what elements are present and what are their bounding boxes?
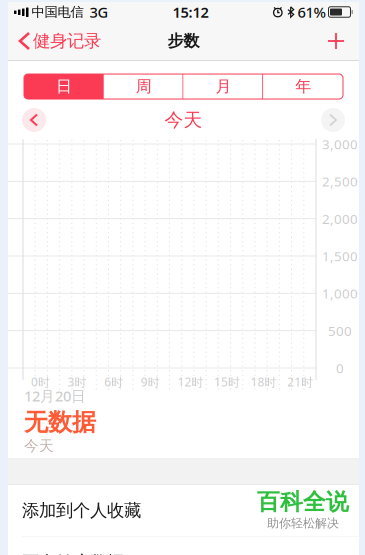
button[interactable]: 周: [104, 74, 184, 99]
button[interactable]: 月: [183, 74, 263, 99]
staticText: 12月20日: [24, 386, 86, 405]
staticText: 21时: [287, 374, 313, 390]
staticText: 9时: [141, 374, 160, 390]
staticText: 周: [136, 77, 152, 96]
button[interactable]: Add: [317, 22, 355, 60]
staticText: 12时: [177, 374, 203, 390]
staticText: 15:12: [172, 2, 208, 22]
staticText: 1,500: [322, 247, 358, 265]
staticText: 今天: [24, 437, 54, 455]
staticText: 500: [328, 322, 352, 340]
button[interactable]: Previous day: [8, 106, 60, 134]
staticText: 健身记录: [33, 30, 101, 52]
staticText: 添加到个人收藏: [22, 500, 141, 521]
button[interactable]: 健身记录: [12, 22, 109, 60]
staticText: 年: [295, 77, 311, 96]
staticText: 更多健康数据: [22, 551, 124, 555]
staticText: 1,000: [322, 284, 358, 302]
button[interactable]: 年: [263, 74, 343, 99]
staticText: 步数: [167, 31, 199, 51]
staticText: 3时: [68, 374, 87, 390]
staticText: 0: [336, 359, 344, 377]
staticText: 18时: [251, 374, 277, 390]
staticText: 中国电信: [31, 4, 83, 20]
staticText: 月: [215, 77, 231, 96]
staticText: 日: [56, 77, 72, 96]
button[interactable]: 日: [24, 74, 104, 99]
staticText: 0时: [31, 374, 50, 390]
staticText: 2,000: [322, 210, 358, 228]
staticText: 61%: [297, 2, 325, 22]
staticText: 6时: [104, 374, 123, 390]
staticText: 百科全说: [257, 488, 349, 516]
staticText: 3G: [89, 2, 108, 22]
staticText: 无数据: [24, 407, 96, 437]
staticText: 今天: [164, 108, 202, 131]
staticText: 2,500: [322, 172, 358, 190]
button[interactable]: 添加到个人收藏: [8, 485, 359, 536]
staticText: 15时: [214, 374, 240, 390]
button[interactable]: Next day: [307, 106, 359, 134]
staticText: 3,000: [322, 135, 358, 153]
staticText: 助你轻松解决: [267, 516, 339, 530]
